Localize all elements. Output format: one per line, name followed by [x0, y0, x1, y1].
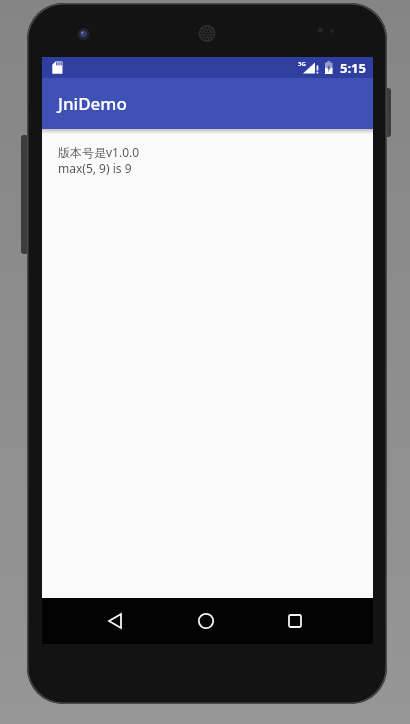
staticText: 版本号是v1.0.0 [58, 144, 140, 160]
button[interactable] [189, 604, 223, 638]
staticText: JniDemo [58, 92, 127, 115]
staticText: 5:15 [340, 59, 366, 77]
button[interactable] [98, 604, 132, 638]
button[interactable] [278, 604, 312, 638]
staticText: 3G [298, 60, 306, 68]
staticText: max(5, 9) is 9 [58, 160, 132, 176]
